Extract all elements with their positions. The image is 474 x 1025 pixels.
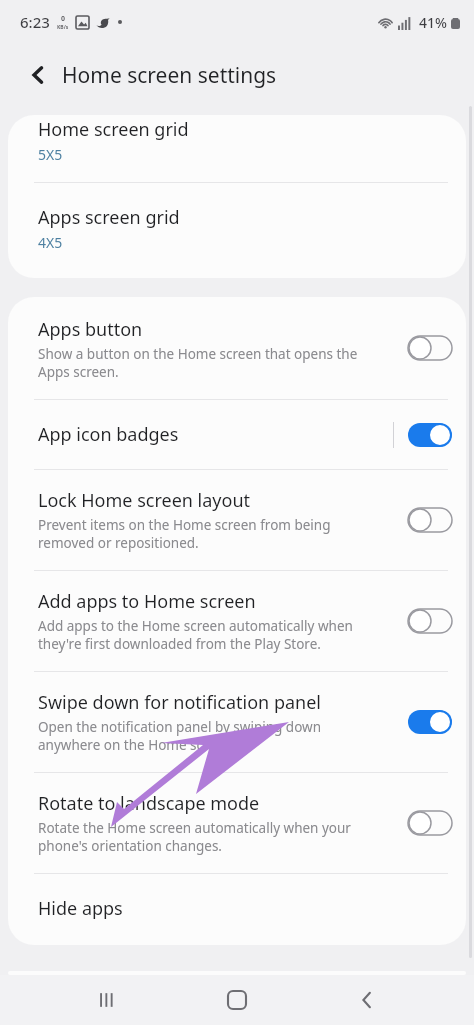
staticText: App icon badges: [38, 422, 179, 447]
button[interactable]: Add apps to Home screen: [8, 571, 466, 671]
staticText: Rotate to landscape mode: [38, 791, 260, 816]
staticText: Rotate the Home screen automatically whe…: [38, 819, 351, 855]
button[interactable]: App icon badges: [8, 400, 466, 469]
button[interactable]: Rotate to landscape mode: [8, 773, 466, 873]
staticText: 0: [61, 14, 66, 24]
button[interactable]: Hide apps: [8, 874, 466, 945]
staticText: Hide apps: [38, 896, 123, 921]
button[interactable]: Apps screen grid: [8, 183, 466, 278]
staticText: Lock Home screen layout: [38, 488, 251, 513]
button[interactable]: Home: [214, 977, 260, 1023]
button[interactable]: Recents: [84, 977, 130, 1023]
staticText: Home screen grid: [38, 117, 189, 142]
staticText: Apps screen grid: [38, 205, 180, 230]
staticText: Prevent items on the Home screen from be…: [38, 516, 331, 552]
button[interactable]: Back: [18, 55, 58, 95]
staticText: Add apps to Home screen: [38, 589, 256, 614]
staticText: Show a button on the Home screen that op…: [38, 345, 358, 381]
staticText: 4X5: [38, 233, 63, 252]
staticText: Add apps to the Home screen automaticall…: [38, 617, 353, 653]
staticText: Apps button: [38, 317, 143, 342]
button[interactable]: Apps button: [8, 297, 466, 399]
staticText: Home screen settings: [62, 61, 277, 90]
staticText: 6:23: [20, 12, 50, 32]
button[interactable]: Swipe down for notification panel: [8, 672, 466, 772]
staticText: 41%: [419, 13, 447, 32]
staticText: Open the notification panel by swiping d…: [38, 718, 321, 754]
staticText: KB/s: [57, 24, 69, 31]
button[interactable]: Home screen grid: [8, 115, 466, 182]
button[interactable]: Back: [344, 977, 390, 1023]
staticText: Swipe down for notification panel: [38, 690, 321, 715]
button[interactable]: Lock Home screen layout: [8, 470, 466, 570]
staticText: 5X5: [38, 145, 63, 164]
